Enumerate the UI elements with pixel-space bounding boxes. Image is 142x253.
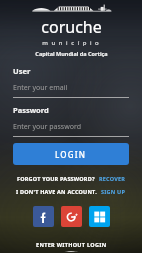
button[interactable]: Sign in with Facebook — [33, 206, 54, 227]
button[interactable]: Sign in with Microsoft — [89, 206, 110, 227]
staticText: ENTER WITHOUT LOGIN — [36, 241, 107, 248]
button[interactable]: ENTER WITHOUT LOGIN — [30, 238, 113, 251]
staticText: RECOVER — [99, 175, 126, 182]
staticText: m u n i c í p i o — [42, 39, 100, 47]
staticText: User — [13, 66, 31, 76]
staticText: I DON'T HAVE AN ACCOUNT. — [16, 188, 97, 195]
staticText: Password — [13, 105, 49, 115]
staticText: coruche — [41, 16, 102, 38]
button[interactable]: Enter your password — [13, 122, 129, 132]
staticText: Capital Mundial da Cortiça — [35, 50, 108, 57]
button[interactable]: Enter your email — [13, 83, 129, 93]
staticText: FORGOT YOUR PASSWORD? — [17, 175, 95, 182]
staticText: SIGN UP — [101, 188, 126, 195]
button[interactable]: I DON'T HAVE AN ACCOUNT. — [12, 186, 130, 197]
button[interactable]: LOGIN — [13, 143, 129, 165]
button[interactable]: Sign in with Google — [61, 206, 82, 227]
button[interactable]: FORGOT YOUR PASSWORD? — [13, 173, 130, 184]
staticText: LOGIN — [55, 149, 87, 160]
